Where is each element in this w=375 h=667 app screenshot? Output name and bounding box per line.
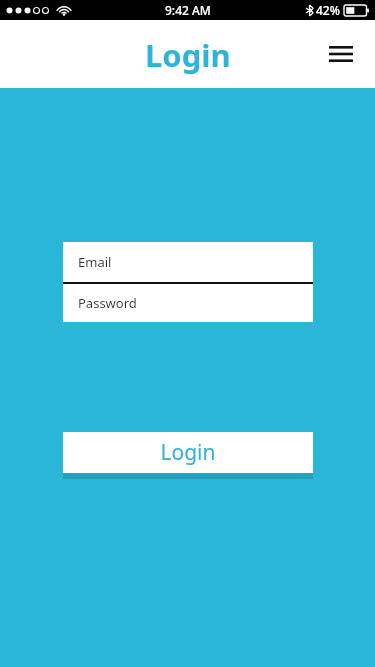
- staticText: 42%: [316, 2, 340, 18]
- button[interactable]: Password: [63, 284, 313, 322]
- button[interactable]: Login: [63, 432, 313, 473]
- staticText: Login: [145, 34, 231, 76]
- staticText: Password: [78, 294, 137, 312]
- staticText: Email: [78, 253, 112, 271]
- button[interactable]: Email: [63, 242, 313, 282]
- button[interactable]: Menu: [319, 32, 363, 76]
- staticText: 9:42 AM: [165, 2, 211, 18]
- staticText: Login: [160, 438, 216, 467]
